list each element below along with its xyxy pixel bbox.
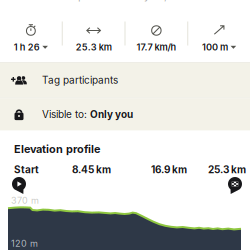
staticText: 370 m xyxy=(11,195,39,206)
button[interactable]: 1 h 26 xyxy=(0,5,62,62)
staticText: Visible to: xyxy=(42,108,87,120)
button[interactable]: Start of route xyxy=(12,177,26,194)
staticText: 16.9 km xyxy=(151,164,187,176)
button[interactable]: End of route xyxy=(228,177,242,194)
staticText: 120 m xyxy=(11,238,38,249)
staticText: Elevation profile xyxy=(14,142,101,156)
staticText: 25.3 km xyxy=(208,164,246,176)
staticText: 25.3 km xyxy=(76,41,112,53)
staticText: 100 m xyxy=(202,41,228,53)
staticText: Completed on May 21, 2021 xyxy=(55,0,195,2)
button[interactable]: Tag participants xyxy=(0,63,250,98)
staticText: Only you xyxy=(90,108,133,120)
button[interactable]: 25.3 km xyxy=(63,5,125,62)
staticText: 17.7 km/h xyxy=(136,41,176,53)
staticText: Tag participants xyxy=(42,74,118,86)
button[interactable]: Visible to: xyxy=(0,98,250,130)
staticText: 8.45 km xyxy=(72,164,111,176)
button[interactable]: 17.7 km/h xyxy=(125,5,187,62)
staticText: Start xyxy=(14,164,39,176)
button[interactable]: 100 m xyxy=(188,5,250,62)
staticText: 1 h 26 xyxy=(14,41,40,53)
